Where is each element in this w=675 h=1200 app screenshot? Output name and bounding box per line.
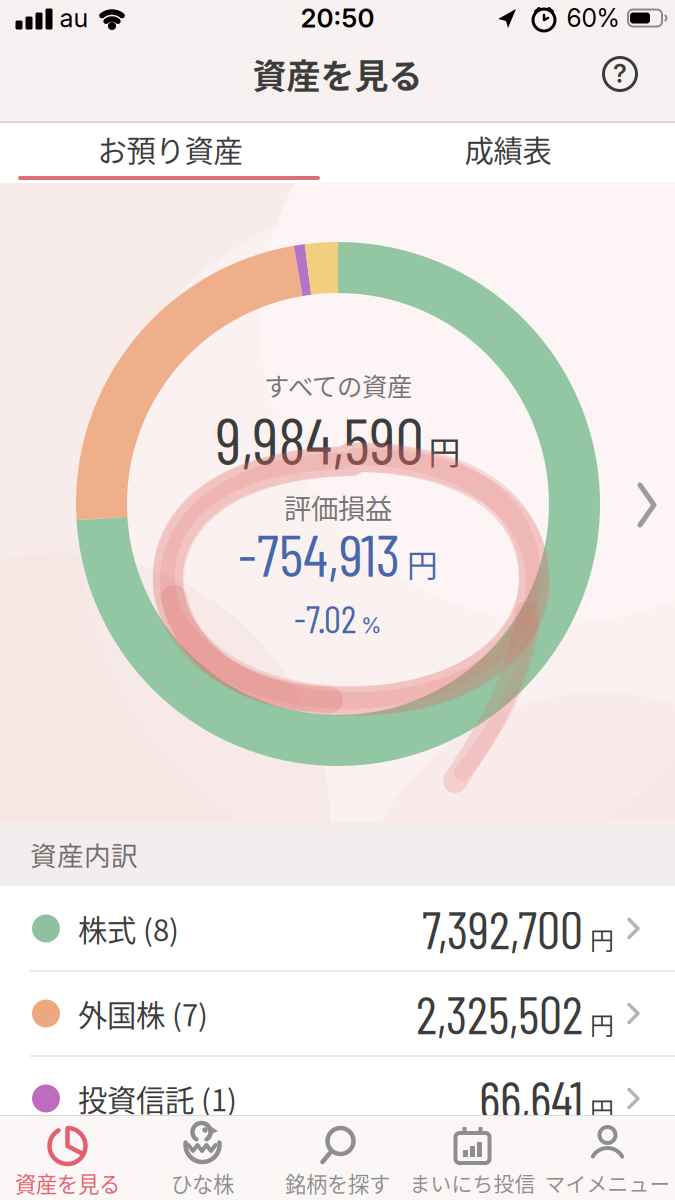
staticText: 円 <box>590 921 614 956</box>
button[interactable]: 成績表 <box>339 123 675 175</box>
staticText: 9,984,590 <box>215 401 423 477</box>
button[interactable]: 資産を見る <box>0 1115 135 1200</box>
staticText: 株式 (8) <box>78 907 179 950</box>
staticText: 評価損益 <box>284 487 392 527</box>
staticText: 66,641 <box>479 1067 583 1130</box>
staticText: 円 <box>590 1006 614 1041</box>
button[interactable]: まいにち投信 <box>405 1115 540 1200</box>
staticText: 銘柄を探す <box>285 1168 390 1198</box>
staticText: すべての資産 <box>264 367 412 403</box>
staticText: お預り資産 <box>97 128 242 170</box>
staticText: 2,325,502 <box>416 982 583 1045</box>
staticText: 20:50 <box>300 2 374 34</box>
button[interactable]: 投資信託 (1) <box>0 1056 675 1141</box>
button[interactable]: 外国株 (7) <box>0 971 675 1056</box>
staticText: 資産内訳 <box>30 835 138 873</box>
staticText: 投資信託 (1) <box>78 1077 237 1120</box>
button[interactable]: マイメニュー <box>540 1115 675 1200</box>
button[interactable]: 銘柄を探す <box>270 1115 405 1200</box>
staticText: 資産を見る <box>15 1168 120 1198</box>
staticText: ? <box>613 58 627 89</box>
staticText: 円 <box>428 427 460 474</box>
button[interactable]: ひな株 <box>135 1115 270 1200</box>
staticText: 資産を見る <box>252 49 422 99</box>
button[interactable] <box>636 481 660 529</box>
staticText: 円 <box>407 541 438 586</box>
staticText: まいにち投信 <box>409 1168 535 1198</box>
staticText: ひな株 <box>171 1168 234 1198</box>
staticText: 60% <box>566 3 619 33</box>
button[interactable]: ? <box>600 54 640 94</box>
button[interactable]: お預り資産 <box>1 123 338 175</box>
staticText: -7.02 <box>294 595 356 641</box>
staticText: 成績表 <box>464 128 551 170</box>
staticText: 外国株 (7) <box>78 992 208 1035</box>
staticText: au <box>59 3 88 33</box>
button[interactable]: 株式 (8) <box>0 886 675 971</box>
staticText: 円 <box>590 1091 614 1126</box>
staticText: マイメニュー <box>544 1168 670 1198</box>
staticText: % <box>361 612 382 638</box>
staticText: 7,392,700 <box>422 897 583 960</box>
staticText: -754,913 <box>238 517 400 589</box>
